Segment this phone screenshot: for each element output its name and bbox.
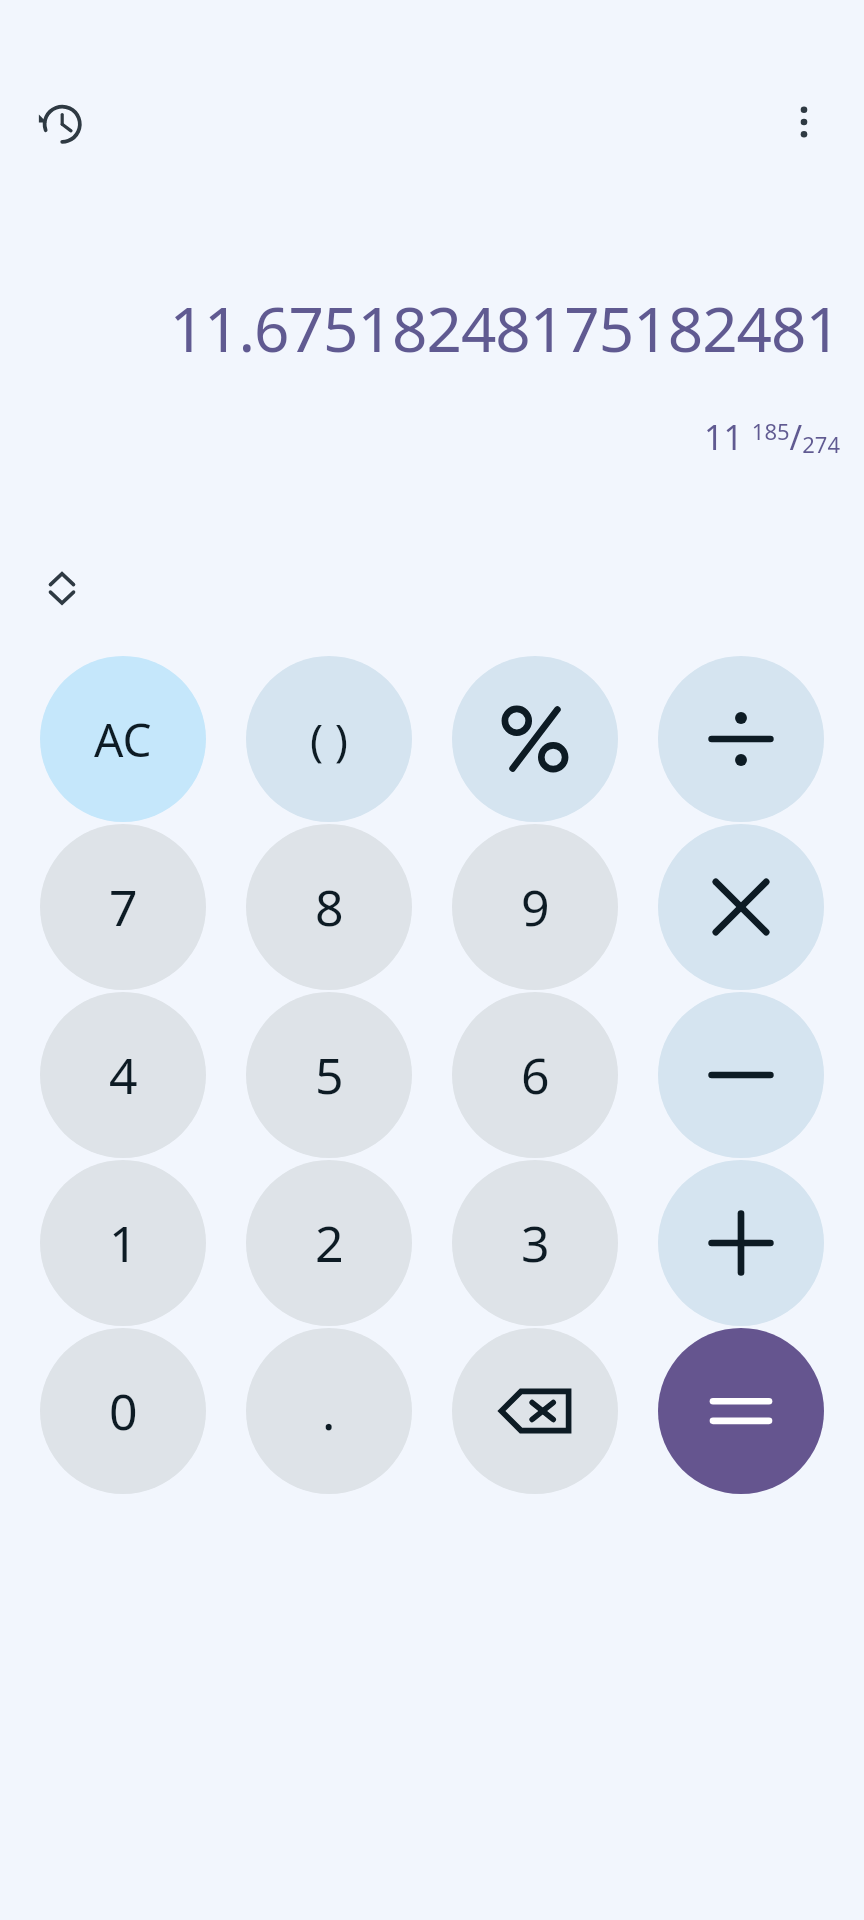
staticText: AC bbox=[94, 708, 152, 771]
button[interactable]: 0 bbox=[40, 1328, 206, 1494]
button[interactable]: Equals bbox=[658, 1328, 824, 1494]
button[interactable]: 1 bbox=[40, 1160, 206, 1326]
staticText: 7 bbox=[109, 873, 138, 941]
button[interactable]: Minus bbox=[658, 992, 824, 1158]
staticText: 6 bbox=[521, 1041, 550, 1109]
button[interactable]: Percent bbox=[452, 656, 618, 822]
staticText: 11.67518248175182481 bbox=[169, 286, 840, 370]
button[interactable]: AC bbox=[40, 656, 206, 822]
button[interactable]: More options bbox=[762, 80, 846, 164]
button[interactable]: 3 bbox=[452, 1160, 618, 1326]
button[interactable]: Expand result bbox=[20, 546, 104, 630]
staticText: 2 bbox=[315, 1209, 344, 1277]
staticText: 8 bbox=[315, 873, 344, 941]
button[interactable]: Delete bbox=[452, 1328, 618, 1494]
button[interactable]: 8 bbox=[246, 824, 412, 990]
button[interactable]: Plus bbox=[658, 1160, 824, 1326]
staticText: 3 bbox=[521, 1209, 550, 1277]
staticText: 11 185/274 bbox=[704, 414, 840, 460]
staticText: 0 bbox=[109, 1377, 138, 1445]
staticText: 4 bbox=[109, 1041, 138, 1109]
button[interactable]: 5 bbox=[246, 992, 412, 1158]
staticText: . bbox=[322, 1377, 336, 1445]
button[interactable]: . bbox=[246, 1328, 412, 1494]
button[interactable]: Divide bbox=[658, 656, 824, 822]
staticText: 9 bbox=[521, 873, 550, 941]
button[interactable]: 4 bbox=[40, 992, 206, 1158]
staticText: 5 bbox=[315, 1041, 344, 1109]
button[interactable]: 9 bbox=[452, 824, 618, 990]
button[interactable]: ( ) bbox=[246, 656, 412, 822]
button[interactable]: History bbox=[18, 80, 102, 164]
button[interactable]: 7 bbox=[40, 824, 206, 990]
staticText: ( ) bbox=[310, 709, 348, 769]
button[interactable]: 6 bbox=[452, 992, 618, 1158]
button[interactable]: Multiply bbox=[658, 824, 824, 990]
staticText: 1 bbox=[109, 1209, 138, 1277]
button[interactable]: 2 bbox=[246, 1160, 412, 1326]
